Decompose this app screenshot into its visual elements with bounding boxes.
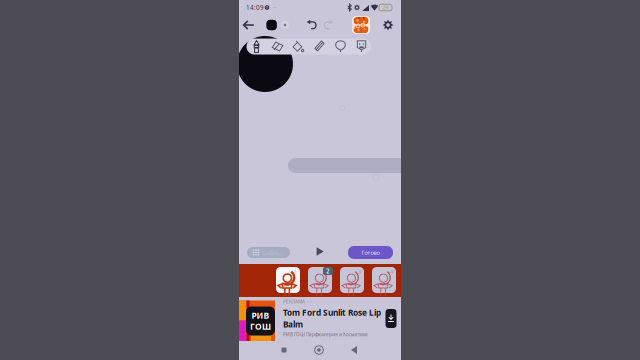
button[interactable]: Sticker	[352, 38, 370, 54]
button[interactable]: Шаблоны	[247, 247, 290, 258]
button[interactable]: Frame 4	[372, 267, 396, 298]
staticText: Balm	[283, 319, 303, 330]
staticText: 2	[326, 267, 330, 275]
staticText: РИВ ГОШ Парфюмерия и Косметика	[283, 331, 368, 338]
staticText: •••	[306, 299, 312, 304]
button[interactable]: Eraser	[268, 38, 286, 54]
button[interactable]: Back	[341, 341, 367, 359]
button[interactable]: Redo	[319, 16, 336, 33]
button[interactable]: Effects	[351, 15, 370, 35]
staticText: 3	[358, 268, 361, 275]
button[interactable]: Frame 3	[340, 267, 364, 298]
button[interactable]: Home	[306, 341, 332, 359]
staticText: BOOM	[351, 21, 370, 30]
staticText: 1	[294, 268, 297, 275]
button[interactable]: Colour	[263, 16, 281, 34]
button[interactable]: Pencil	[310, 38, 328, 54]
staticText: Шаблоны	[261, 249, 284, 256]
button[interactable]: Готово	[348, 246, 393, 259]
button[interactable]: Back	[239, 15, 259, 35]
button[interactable]: Recent apps	[271, 341, 297, 359]
staticText: Готово	[361, 249, 379, 256]
staticText: 4	[390, 268, 393, 275]
staticText: РЕКЛАМА	[283, 298, 305, 305]
button[interactable]: РИВ	[239, 297, 401, 341]
button[interactable]: Frame 1	[276, 267, 300, 298]
staticText: 14:09	[246, 3, 264, 12]
button[interactable]: Undo	[304, 16, 321, 33]
staticText: РИВ	[251, 310, 269, 321]
button[interactable]: Shape	[331, 38, 349, 54]
button[interactable]: Brush	[247, 38, 265, 54]
staticText: 24	[382, 4, 388, 11]
button[interactable]: Settings	[379, 16, 397, 34]
button[interactable]: Brush size	[277, 17, 293, 33]
staticText: ГОШ	[250, 321, 271, 332]
button[interactable]: Fill	[289, 38, 307, 54]
button[interactable]: Frame 2	[308, 267, 332, 298]
button[interactable]: Play	[311, 243, 329, 259]
staticText: Tom Ford Sunlit Rose Lip	[283, 307, 381, 318]
